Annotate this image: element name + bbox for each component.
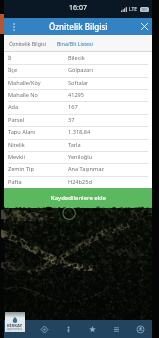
staticText: Softalar	[68, 79, 89, 87]
staticText: BİRKAY	[7, 323, 23, 329]
button[interactable]: Layers	[104, 320, 128, 338]
staticText: Tapu Alanı	[8, 128, 36, 136]
staticText: Mahalle No	[8, 91, 38, 99]
staticText: Ada	[8, 103, 19, 111]
button[interactable]: Ada	[4, 101, 152, 113]
button[interactable]: Profile	[128, 320, 152, 338]
staticText: Kaydedilenlere ekle	[51, 194, 106, 202]
staticText: Bilecik	[68, 54, 85, 62]
button[interactable]: Favorites	[80, 320, 104, 338]
button[interactable]: Bina/Blt Listesi	[52, 35, 98, 52]
button[interactable]: Mevkii	[4, 151, 152, 163]
staticText: gayrimenkul	[7, 327, 23, 331]
button[interactable]: Parsel	[4, 114, 152, 126]
staticText: İlçe	[8, 66, 18, 74]
staticText: Tarla	[68, 141, 81, 149]
button[interactable]: İlçe	[4, 64, 152, 76]
button[interactable]: Mahalle No	[4, 89, 152, 101]
button[interactable]: Zemin Tip	[4, 163, 152, 175]
button[interactable]: Locate	[32, 320, 56, 338]
staticText: Yeniloğlu	[68, 153, 93, 161]
staticText: Zemin Tip	[8, 165, 34, 173]
button[interactable]: Pafta	[4, 176, 152, 188]
staticText: Öznitelik Bilgisi	[9, 40, 47, 47]
button[interactable]: İl	[4, 52, 152, 64]
button[interactable]: Tapu Alanı	[4, 126, 152, 138]
staticText: İl	[8, 54, 12, 62]
button[interactable]: More options	[4, 18, 24, 35]
staticText: 41295	[68, 91, 84, 99]
staticText: 167	[68, 103, 78, 111]
button[interactable]: Öznitelik Bilgisi	[4, 35, 52, 52]
button[interactable]: Nitelik	[4, 139, 152, 151]
staticText: H24b25d	[68, 178, 92, 186]
button[interactable]: Kaydedilenlere ekle	[4, 188, 152, 208]
staticText: Mahalle/Köy	[8, 79, 41, 87]
staticText: Mevkii	[8, 153, 25, 161]
button[interactable]: Info	[56, 320, 80, 338]
staticText: Ana Taşınmaz	[68, 165, 105, 173]
staticText: 16:07	[69, 3, 87, 13]
staticText: LTE	[129, 6, 138, 13]
staticText: Nitelik	[8, 141, 25, 149]
staticText: Gölpazarı	[68, 66, 93, 74]
button[interactable]: Menu	[4, 320, 32, 338]
button[interactable]: BİRKAY logo	[5, 312, 25, 332]
staticText: Pafta	[8, 178, 22, 186]
staticText: 1.318,84	[68, 128, 91, 136]
staticText: 37	[68, 116, 75, 124]
button[interactable]: Mahalle/Köy	[4, 77, 152, 89]
staticText: Parsel	[8, 116, 25, 124]
button[interactable]: Close	[136, 18, 152, 35]
staticText: 50	[142, 7, 147, 12]
staticText: Bina/Blt Listesi	[57, 40, 93, 47]
staticText: Öznitelik Bilgisi	[49, 21, 108, 32]
